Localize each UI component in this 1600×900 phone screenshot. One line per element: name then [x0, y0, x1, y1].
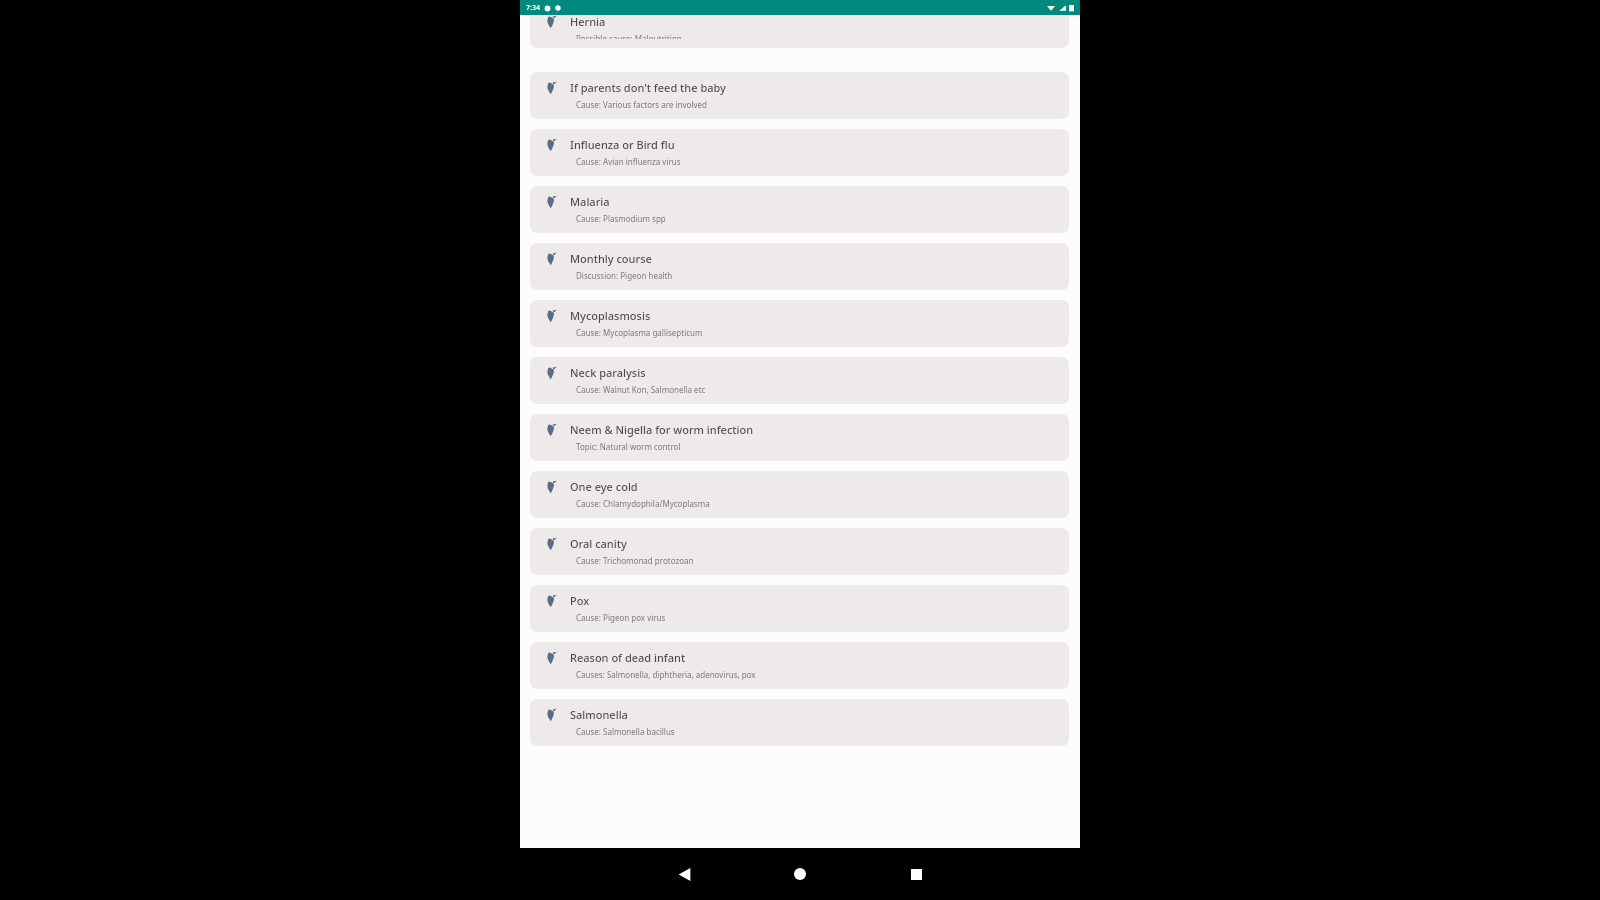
button[interactable]: Pigeon — [530, 528, 1069, 575]
other: Pigeon — [544, 480, 558, 494]
button[interactable]: Recent apps — [886, 848, 946, 900]
other: Pigeon — [544, 309, 558, 323]
staticText: Cause: Salmonella bacillus — [576, 726, 675, 737]
button[interactable]: Pigeon — [530, 585, 1069, 632]
staticText: Oral canity — [570, 536, 627, 551]
button[interactable]: Pigeon — [530, 300, 1069, 347]
button[interactable]: Back — [654, 848, 714, 900]
staticText: Cause: Chlamydophila/Mycoplasma — [576, 498, 710, 509]
button[interactable]: Pigeon — [530, 72, 1069, 119]
button[interactable]: Pigeon — [530, 642, 1069, 689]
staticText: Cause: Avian influenza virus — [576, 156, 681, 167]
button[interactable]: Pigeon — [530, 357, 1069, 404]
other: Pigeon — [544, 252, 558, 266]
staticText: Salmonella — [570, 707, 628, 722]
staticText: Reason of dead infant — [570, 650, 686, 665]
staticText: If parents don't feed the baby — [570, 80, 726, 95]
staticText: Topic: Natural worm control — [576, 441, 681, 452]
staticText: Influenza or Bird flu — [570, 137, 675, 152]
other: Pigeon — [544, 708, 558, 722]
staticText: Cause: Mycoplasma gallisepticum — [576, 327, 703, 338]
staticText: Neck paralysis — [570, 365, 646, 380]
staticText: Cause: Walnut Kon, Salmonella etc — [576, 384, 706, 395]
staticText: 7:34 — [526, 3, 540, 13]
button[interactable]: Pigeon — [530, 186, 1069, 233]
other: Pigeon — [544, 651, 558, 665]
other: Pigeon — [544, 366, 558, 380]
staticText: Monthly course — [570, 251, 652, 266]
staticText: Discussion: Pigeon health — [576, 270, 673, 281]
button[interactable]: Pigeon — [530, 699, 1069, 746]
button[interactable]: Pigeon — [530, 414, 1069, 461]
staticText: Malaria — [570, 194, 610, 209]
staticText: Cause: Various factors are involved — [576, 99, 707, 110]
staticText: Neem & Nigella for worm infection — [570, 422, 754, 437]
staticText: Mycoplasmosis — [570, 308, 651, 323]
other: Pigeon — [544, 195, 558, 209]
staticText: Causes: Salmonella, diphtheria, adenovir… — [576, 669, 756, 680]
staticText: Cause: Pigeon pox virus — [576, 612, 666, 623]
other: Pigeon — [544, 537, 558, 551]
staticText: Possible cause: Malnutrition — [576, 33, 682, 39]
staticText: One eye cold — [570, 479, 638, 494]
other: Pigeon — [544, 423, 558, 437]
other: Pigeon — [544, 81, 558, 95]
button[interactable]: Pigeon — [530, 471, 1069, 518]
button[interactable]: Pigeon — [530, 129, 1069, 176]
staticText: Pox — [570, 593, 590, 608]
button[interactable]: Home — [770, 848, 830, 900]
button[interactable]: Pigeon — [530, 15, 1069, 48]
staticText: Hernia — [570, 15, 606, 29]
staticText: Cause: Trichomonad protozoan — [576, 555, 694, 566]
other: Pigeon — [544, 138, 558, 152]
other: Pigeon — [544, 594, 558, 608]
button[interactable]: Pigeon — [530, 243, 1069, 290]
other: Pigeon — [544, 15, 558, 29]
staticText: Cause: Plasmodium spp — [576, 213, 666, 224]
